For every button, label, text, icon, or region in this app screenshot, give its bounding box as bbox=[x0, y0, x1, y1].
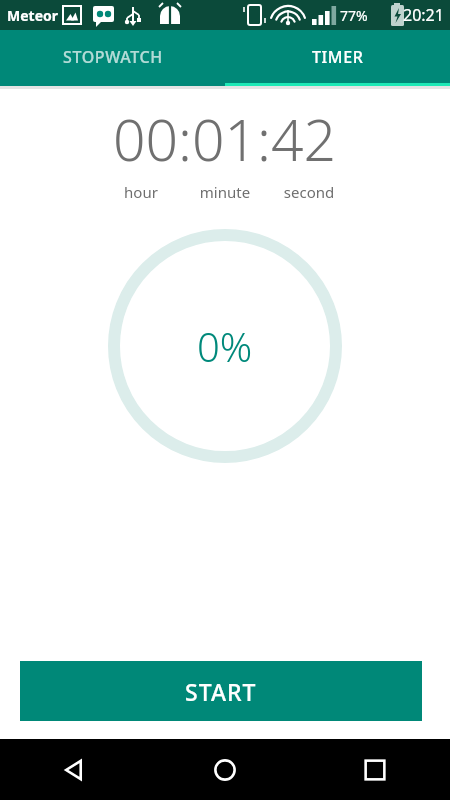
staticText: START bbox=[185, 676, 257, 707]
staticText: 77% bbox=[340, 6, 368, 25]
staticText: second bbox=[267, 182, 351, 202]
staticText: hour bbox=[99, 182, 183, 202]
staticText: TIMER bbox=[312, 46, 364, 68]
button[interactable]: Recent apps bbox=[300, 739, 450, 800]
staticText: 0% bbox=[197, 319, 253, 373]
staticText: 20:21 bbox=[403, 4, 444, 26]
staticText: Meteor bbox=[7, 6, 59, 25]
staticText: STOPWATCH bbox=[63, 46, 163, 68]
staticText: minute bbox=[183, 182, 267, 202]
button[interactable]: Home bbox=[150, 739, 300, 800]
staticText: 00:01:42 bbox=[113, 100, 337, 178]
button[interactable]: Back bbox=[0, 739, 150, 800]
button[interactable]: START bbox=[20, 661, 422, 721]
button[interactable]: TIMER bbox=[225, 30, 450, 83]
button[interactable]: STOPWATCH bbox=[0, 30, 225, 83]
